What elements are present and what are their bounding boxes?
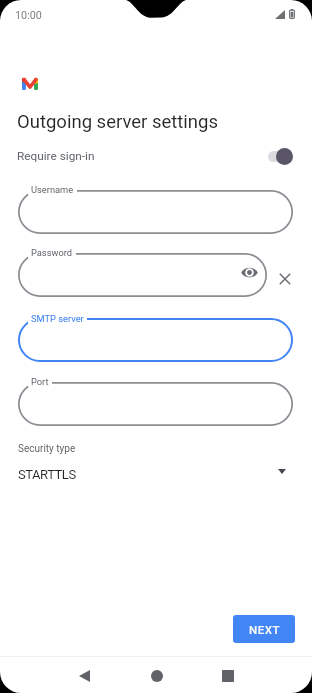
staticText: Outgoing server settings bbox=[17, 111, 219, 133]
staticText: SMTP server bbox=[31, 313, 84, 324]
button[interactable] bbox=[18, 253, 267, 297]
staticText: STARTTLS bbox=[18, 467, 76, 482]
staticText: 10:00 bbox=[15, 9, 42, 22]
button[interactable]: STARTTLS bbox=[0, 462, 312, 486]
button[interactable]: Back bbox=[70, 661, 99, 690]
button[interactable] bbox=[18, 382, 293, 426]
button[interactable]: NEXT bbox=[233, 615, 295, 643]
staticText: Password bbox=[31, 247, 73, 258]
button[interactable]: Recents bbox=[213, 661, 242, 690]
staticText: NEXT bbox=[249, 623, 280, 636]
button[interactable]: Clear bbox=[279, 273, 291, 285]
button[interactable] bbox=[18, 190, 293, 234]
button[interactable]: Show password bbox=[241, 266, 258, 279]
staticText: Require sign-in bbox=[17, 149, 95, 163]
button[interactable] bbox=[18, 318, 293, 362]
button[interactable]: Home bbox=[142, 661, 171, 690]
staticText: Port bbox=[31, 376, 49, 387]
button[interactable]: Require sign-in bbox=[0, 142, 312, 170]
staticText: Security type bbox=[18, 443, 76, 455]
staticText: Username bbox=[31, 184, 74, 195]
